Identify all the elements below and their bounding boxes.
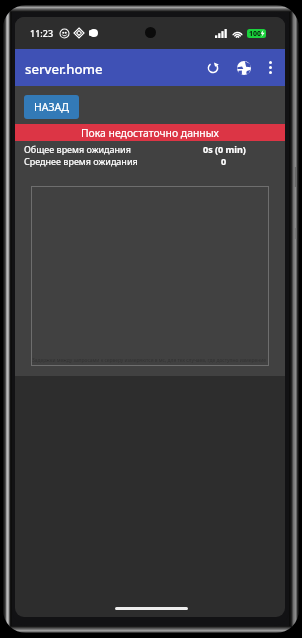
staticText: Задержки между запросами к серверу измер… — [32, 357, 266, 364]
staticText: НАЗАД — [34, 100, 69, 114]
staticText: Общее время ожидания — [24, 143, 131, 155]
staticText: Среднее время ожидания — [24, 155, 138, 167]
button[interactable]: НАЗАД — [24, 95, 79, 119]
staticText: 100 — [249, 29, 262, 38]
staticText: 0 — [221, 155, 227, 167]
button[interactable]: More options — [259, 49, 282, 86]
staticText: server.home — [25, 60, 103, 78]
button[interactable]: Refresh — [198, 49, 228, 86]
button[interactable]: Open in browser — [228, 49, 259, 86]
staticText: 11:23 — [30, 27, 54, 39]
staticText: Пока недостаточно данных — [81, 126, 219, 140]
staticText: 0s (0 min) — [203, 143, 246, 155]
